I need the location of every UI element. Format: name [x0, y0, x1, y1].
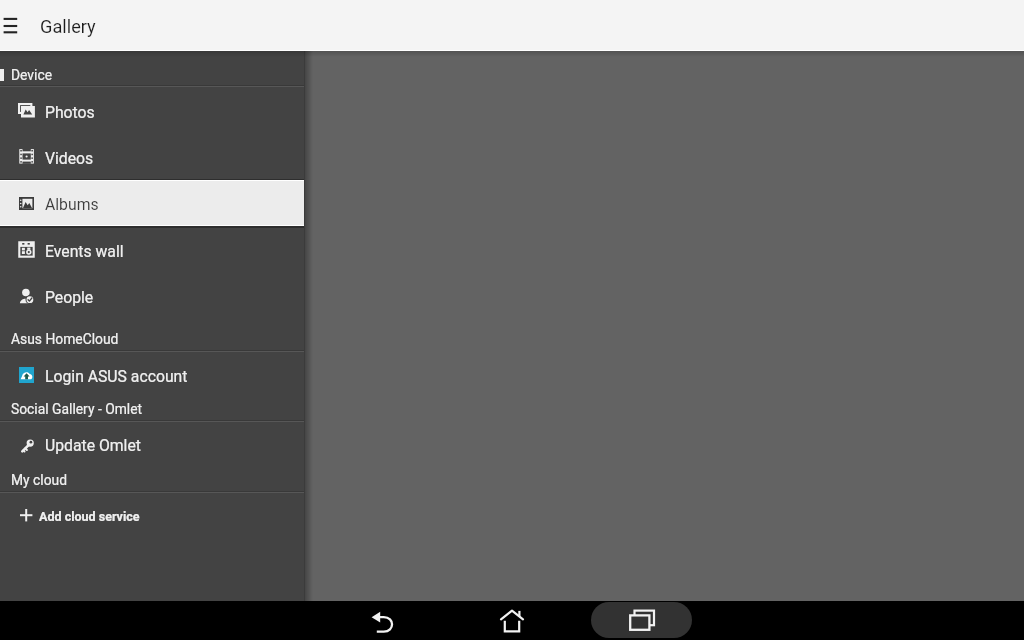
staticText: My cloud — [11, 472, 68, 488]
staticText: Gallery — [40, 16, 96, 37]
staticText: Social Gallery - Omlet — [11, 401, 143, 417]
button[interactable]: Events wall — [0, 228, 304, 272]
staticText: Albums — [45, 195, 99, 213]
button[interactable]: Albums — [0, 179, 304, 228]
staticText: Login ASUS account — [45, 367, 188, 385]
button[interactable]: Open navigation drawer — [0, 0, 42, 50]
staticText: Update Omlet — [45, 436, 141, 454]
staticText: Photos — [45, 103, 95, 121]
staticText: Events wall — [45, 242, 124, 260]
button[interactable]: Update Omlet — [0, 421, 304, 467]
staticText: Add cloud service — [39, 509, 140, 524]
button[interactable]: People — [0, 272, 304, 318]
button[interactable]: Login ASUS account — [0, 351, 304, 397]
staticText: Device — [11, 67, 52, 83]
button[interactable]: Videos — [0, 132, 304, 179]
staticText: Asus HomeCloud — [11, 331, 119, 347]
button[interactable]: Back — [347, 601, 419, 640]
staticText: Videos — [45, 149, 94, 167]
button[interactable]: Add cloud service — [0, 493, 304, 539]
button[interactable]: Photos — [0, 86, 304, 132]
button[interactable]: Home — [476, 601, 548, 640]
staticText: People — [45, 288, 94, 306]
button[interactable]: Recent apps — [591, 602, 692, 638]
